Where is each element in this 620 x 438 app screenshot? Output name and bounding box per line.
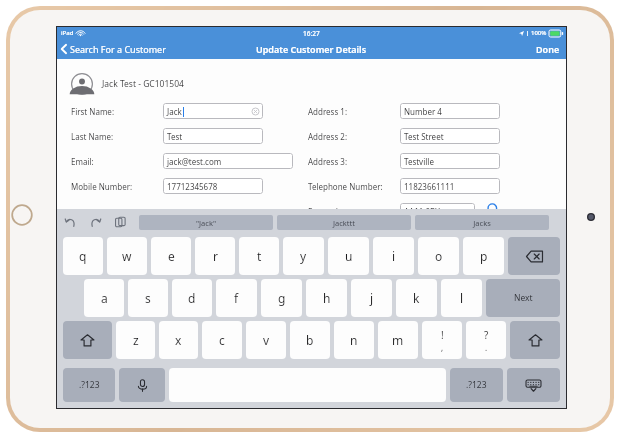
staticText: ? xyxy=(484,328,489,342)
staticText: Jack Test - GC101504 xyxy=(102,78,184,90)
button[interactable]: q xyxy=(63,237,103,275)
button[interactable]: Shift xyxy=(63,321,112,359)
staticText: i xyxy=(392,248,396,264)
staticText: m xyxy=(392,332,404,348)
button[interactable]: m xyxy=(378,321,418,359)
staticText: Test Street xyxy=(404,131,444,142)
button[interactable]: .?123 xyxy=(450,368,503,402)
staticText: l xyxy=(460,290,464,306)
button[interactable]: Test Street xyxy=(400,128,500,144)
staticText: u xyxy=(345,248,353,264)
staticText: h xyxy=(323,290,331,306)
button[interactable]: d xyxy=(172,279,212,317)
staticText: q xyxy=(79,248,87,264)
staticText: , xyxy=(441,342,444,353)
staticText: "Jack" xyxy=(196,218,216,228)
staticText: y xyxy=(300,248,307,264)
button[interactable]: k xyxy=(396,279,437,317)
button[interactable]: Number 4 xyxy=(400,103,500,119)
staticText: Address 1: xyxy=(308,106,348,117)
staticText: Mobile Number: xyxy=(71,181,133,192)
button[interactable]: Shift xyxy=(510,321,560,359)
staticText: Last Name: xyxy=(71,131,114,142)
button[interactable]: AA11 0BY xyxy=(400,203,475,219)
button[interactable]: n xyxy=(334,321,374,359)
button[interactable]: Jackttt xyxy=(277,215,411,230)
button[interactable]: 11823661111 xyxy=(400,178,500,194)
staticText: d xyxy=(188,290,196,306)
button[interactable]: g xyxy=(261,279,302,317)
staticText: Jacks xyxy=(473,218,491,228)
button[interactable]: ? xyxy=(466,321,506,359)
button[interactable]: z xyxy=(116,321,155,359)
staticText: iPad xyxy=(61,29,74,37)
staticText: e xyxy=(168,248,175,264)
button[interactable]: jack@test.com xyxy=(163,153,293,169)
staticText: .?123 xyxy=(466,379,487,391)
button[interactable]: a xyxy=(84,279,124,317)
staticText: 100% xyxy=(531,29,547,37)
staticText: n xyxy=(350,332,358,348)
staticText: ! xyxy=(441,328,444,342)
staticText: f xyxy=(234,290,239,306)
button[interactable]: 17712345678 xyxy=(163,178,263,194)
button[interactable]: e xyxy=(151,237,191,275)
staticText: jack@test.com xyxy=(167,156,222,167)
button[interactable]: Backspace xyxy=(508,237,560,275)
button[interactable]: Testville xyxy=(400,153,500,169)
staticText: r xyxy=(213,248,218,264)
staticText: .?123 xyxy=(79,379,100,391)
button[interactable]: c xyxy=(202,321,242,359)
button[interactable]: .?123 xyxy=(63,368,115,402)
button[interactable]: Hide keyboard xyxy=(507,368,560,402)
button[interactable]: h xyxy=(306,279,347,317)
button[interactable]: Redo xyxy=(87,213,103,231)
button[interactable]: Search For a Customer xyxy=(57,41,172,57)
button[interactable]: x xyxy=(159,321,198,359)
staticText: g xyxy=(278,290,286,306)
button[interactable]: Jacks xyxy=(415,215,549,230)
staticText: x xyxy=(175,332,182,348)
button[interactable]: Paste xyxy=(112,213,128,231)
button[interactable]: Search postcode xyxy=(483,199,503,219)
button[interactable]: ! xyxy=(422,321,462,359)
button[interactable]: o xyxy=(418,237,459,275)
button[interactable]: "Jack" xyxy=(139,215,273,230)
staticText: Test xyxy=(167,131,183,142)
button[interactable]: i xyxy=(373,237,414,275)
staticText: Address 2: xyxy=(308,131,348,142)
button[interactable]: v xyxy=(246,321,286,359)
button[interactable]: t xyxy=(239,237,279,275)
button[interactable]: u xyxy=(328,237,369,275)
button[interactable]: s xyxy=(128,279,168,317)
staticText: Jackttt xyxy=(333,218,355,228)
button[interactable]: Undo xyxy=(62,213,78,231)
staticText: j xyxy=(370,290,374,306)
button[interactable]: r xyxy=(195,237,235,275)
staticText: Telephone Number: xyxy=(308,181,383,192)
button[interactable]: Done xyxy=(530,40,566,58)
button[interactable]: l xyxy=(441,279,482,317)
staticText: a xyxy=(101,290,108,306)
staticText: AA11 0BY xyxy=(404,206,440,217)
button[interactable]: j xyxy=(351,279,392,317)
button[interactable]: Jack xyxy=(163,103,263,119)
staticText: p xyxy=(480,248,488,264)
staticText: s xyxy=(145,290,151,306)
staticText: 11823661111 xyxy=(404,181,455,192)
button[interactable]: p xyxy=(463,237,504,275)
button[interactable]: f xyxy=(216,279,257,317)
button[interactable]: Dictate xyxy=(119,368,165,402)
staticText: v xyxy=(263,332,270,348)
button[interactable]: Test xyxy=(163,128,263,144)
staticText: 17712345678 xyxy=(167,181,218,192)
staticText: c xyxy=(219,332,225,348)
button[interactable]: Next xyxy=(486,279,560,317)
button[interactable]: y xyxy=(283,237,324,275)
staticText: t xyxy=(257,248,262,264)
staticText: Number 4 xyxy=(404,106,442,117)
button[interactable]: w xyxy=(107,237,147,275)
button[interactable]: b xyxy=(290,321,330,359)
staticText: z xyxy=(133,332,139,348)
